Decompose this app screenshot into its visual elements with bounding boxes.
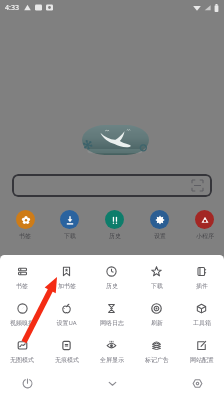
staticText: 无图模式 bbox=[10, 356, 34, 364]
button[interactable]: 工具箱 bbox=[179, 292, 224, 329]
staticText: 设置 bbox=[154, 232, 166, 240]
button[interactable]: Collapse menu bbox=[98, 366, 126, 400]
button[interactable]: 书签 bbox=[3, 210, 47, 240]
button[interactable]: 刷新 bbox=[134, 292, 179, 329]
button[interactable]: 历史 bbox=[89, 255, 134, 292]
button[interactable]: 全屏显示 bbox=[89, 329, 134, 366]
staticText: 书签 bbox=[16, 282, 28, 290]
staticText: 下载 bbox=[64, 232, 76, 240]
staticText: 书签 bbox=[19, 232, 31, 240]
button[interactable]: Close browser bbox=[13, 366, 41, 400]
staticText: 下载 bbox=[151, 282, 163, 290]
staticText: 加书签 bbox=[58, 282, 76, 290]
staticText: 4:33 bbox=[5, 3, 19, 13]
button[interactable]: Search or type URL bbox=[12, 174, 212, 197]
staticText: 标记广告 bbox=[145, 356, 169, 364]
staticText: 历史 bbox=[109, 232, 121, 240]
staticText: 刷新 bbox=[151, 319, 163, 327]
button[interactable]: 小程序 bbox=[182, 210, 224, 240]
button[interactable]: 视频嗅探 bbox=[0, 292, 44, 329]
staticText: 插件 bbox=[196, 282, 208, 290]
button[interactable]: 标记广告 bbox=[134, 329, 179, 366]
staticText: 设置UA bbox=[56, 319, 77, 327]
button[interactable]: 书签 bbox=[0, 255, 44, 292]
staticText: 网络日志 bbox=[100, 319, 124, 327]
button[interactable]: 插件 bbox=[179, 255, 224, 292]
button[interactable]: 下载 bbox=[47, 210, 92, 240]
button[interactable]: 网络日志 bbox=[89, 292, 134, 329]
button[interactable]: 网站配置 bbox=[179, 329, 224, 366]
staticText: 全屏显示 bbox=[100, 356, 124, 364]
button[interactable]: 历史 bbox=[92, 210, 137, 240]
button[interactable]: 加书签 bbox=[44, 255, 89, 292]
button[interactable]: 下载 bbox=[134, 255, 179, 292]
button[interactable]: 设置UA bbox=[44, 292, 89, 329]
staticText: 小程序 bbox=[196, 232, 214, 240]
button[interactable]: 无痕模式 bbox=[44, 329, 89, 366]
staticText: 工具箱 bbox=[193, 319, 211, 327]
staticText: 无痕模式 bbox=[55, 356, 79, 364]
staticText: 网站配置 bbox=[190, 356, 214, 364]
button[interactable]: 设置 bbox=[137, 210, 182, 240]
button[interactable]: Settings bbox=[183, 366, 211, 400]
button[interactable]: 无图模式 bbox=[0, 329, 44, 366]
staticText: 视频嗅探 bbox=[10, 319, 34, 327]
staticText: 历史 bbox=[106, 282, 118, 290]
